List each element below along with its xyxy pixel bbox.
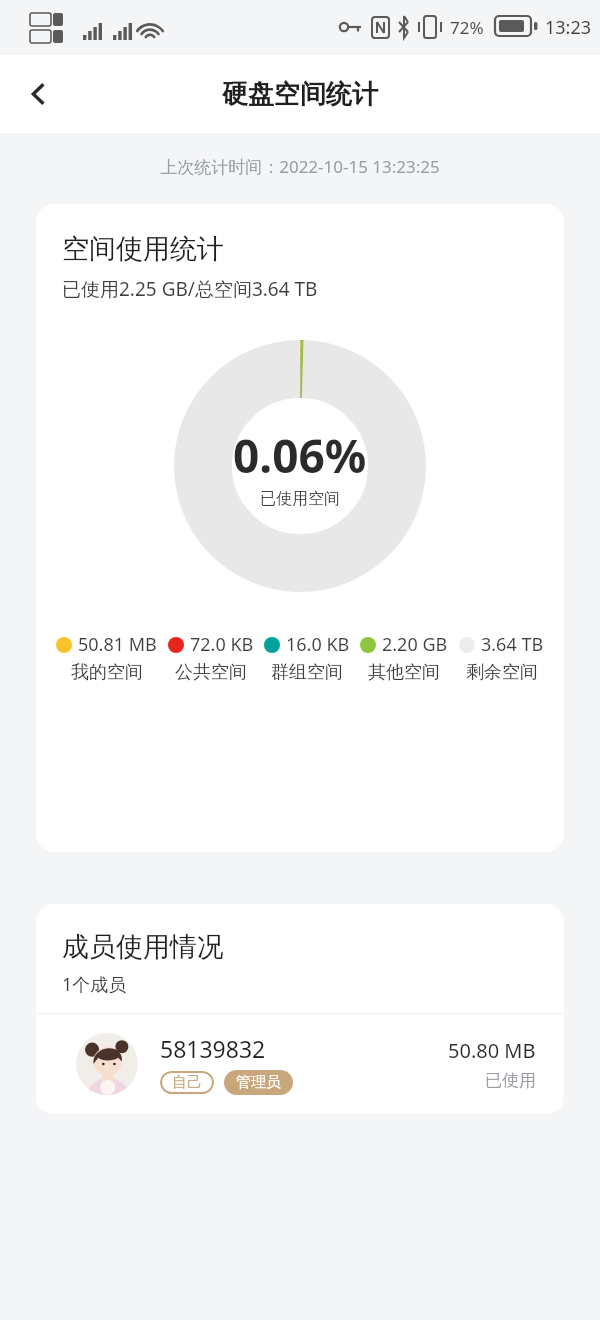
staticText: 自己: [172, 1073, 202, 1092]
staticText: 16.0 KB: [286, 632, 350, 657]
staticText: 管理员: [236, 1073, 281, 1092]
staticText: 已使用2.25 GB/总空间3.64 TB: [62, 276, 318, 302]
staticText: 已使用空间: [260, 489, 340, 509]
staticText: 0.06%: [233, 424, 367, 487]
staticText: 72.0 KB: [190, 632, 254, 657]
staticText: 其他空间: [368, 661, 440, 684]
staticText: 上次统计时间：2022-10-15 13:23:25: [0, 155, 600, 178]
staticText: 13:23: [545, 15, 592, 40]
staticText: 我的空间: [71, 661, 143, 684]
staticText: 58139832: [160, 1033, 266, 1064]
staticText: 成员使用情况: [62, 930, 224, 964]
staticText: 群组空间: [271, 661, 343, 684]
staticText: 50.81 MB: [78, 632, 157, 657]
button[interactable]: 空间使用统计: [36, 204, 564, 852]
staticText: 空间使用统计: [62, 232, 224, 266]
staticText: 50.80 MB: [448, 1037, 536, 1064]
staticText: 已使用: [485, 1070, 536, 1091]
staticText: 72%: [450, 16, 484, 39]
staticText: 剩余空间: [466, 661, 538, 684]
button[interactable]: 58139832: [36, 1014, 564, 1114]
staticText: 公共空间: [175, 661, 247, 684]
staticText: 2.20 GB: [382, 632, 448, 657]
staticText: 1个成员: [62, 972, 127, 997]
staticText: 硬盘空间统计: [0, 78, 600, 111]
button[interactable]: Back: [14, 70, 62, 118]
staticText: 3.64 TB: [481, 632, 544, 657]
